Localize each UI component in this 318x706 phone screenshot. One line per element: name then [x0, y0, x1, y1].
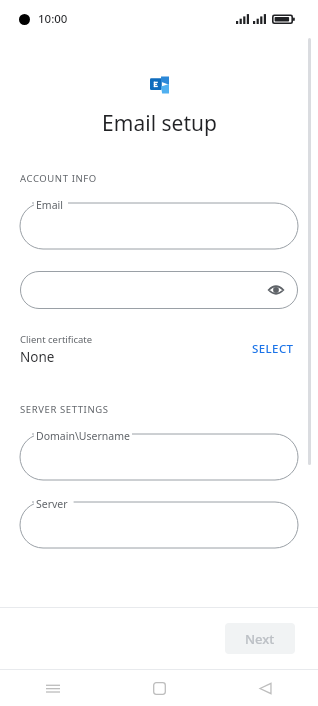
staticText: 10:00 [38, 11, 68, 27]
button[interactable]: Next [225, 623, 295, 654]
staticText: Email setup [102, 109, 217, 138]
button[interactable]: Show password [265, 279, 287, 301]
staticText: Email [36, 198, 63, 212]
button[interactable]: Domain\Username [20, 434, 298, 480]
staticText: Client certificate [20, 333, 93, 346]
staticText: ACCOUNT INFO [20, 172, 97, 185]
staticText: Next [245, 630, 275, 648]
button[interactable]: Email [20, 203, 298, 249]
button[interactable]: Back [212, 670, 318, 706]
staticText: SELECT [252, 341, 294, 357]
button[interactable]: Show password [20, 271, 298, 309]
staticText: SERVER SETTINGS [20, 403, 109, 416]
button[interactable]: Home [106, 670, 212, 706]
staticText: Domain\Username [36, 429, 130, 443]
staticText: Server [36, 497, 68, 511]
button[interactable]: Server [20, 502, 298, 548]
staticText: None [20, 348, 55, 366]
button[interactable]: Recent apps [0, 670, 106, 706]
button[interactable]: SELECT [248, 337, 298, 361]
